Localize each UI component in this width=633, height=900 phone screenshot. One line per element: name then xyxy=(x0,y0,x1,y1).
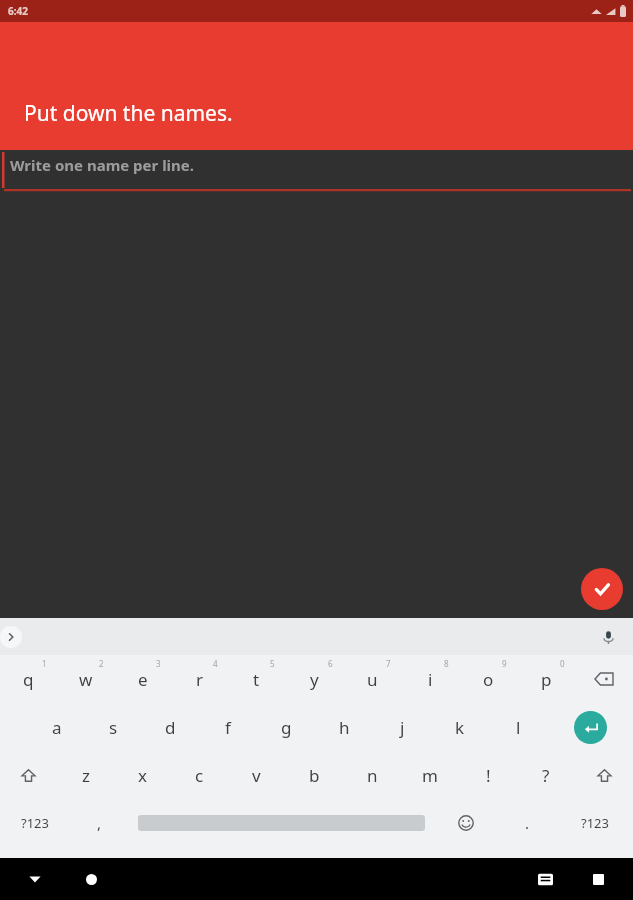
button[interactable]: Space xyxy=(129,799,434,847)
staticText: 8 xyxy=(444,658,449,669)
staticText: o xyxy=(483,668,494,691)
button[interactable]: f xyxy=(199,703,257,751)
button[interactable]: p xyxy=(517,655,575,703)
staticText: a xyxy=(52,716,62,739)
staticText: 9 xyxy=(502,658,507,669)
button[interactable]: m xyxy=(401,751,459,799)
button[interactable]: q xyxy=(0,655,57,703)
button[interactable]: o xyxy=(459,655,517,703)
button[interactable]: c xyxy=(171,751,228,799)
button[interactable]: Recent apps xyxy=(585,866,611,892)
button[interactable]: ! xyxy=(459,751,517,799)
button[interactable]: j xyxy=(373,703,431,751)
staticText: 6:42 xyxy=(8,4,28,18)
staticText: 4 xyxy=(213,658,218,669)
staticText: ? xyxy=(542,764,550,787)
staticText: h xyxy=(339,716,350,739)
staticText: v xyxy=(252,764,261,787)
staticText: w xyxy=(79,668,93,691)
button[interactable]: Home xyxy=(78,866,104,892)
button[interactable]: i xyxy=(401,655,459,703)
button[interactable]: Voice input xyxy=(597,626,619,648)
button[interactable]: Switch keyboard xyxy=(532,866,558,892)
staticText: 5 xyxy=(270,658,275,669)
button[interactable]: . xyxy=(498,799,557,847)
staticText: i xyxy=(428,668,433,691)
staticText: ?123 xyxy=(21,814,49,832)
button[interactable]: x xyxy=(114,751,171,799)
staticText: t xyxy=(253,668,260,691)
staticText: Write one name per line. xyxy=(10,155,195,175)
button[interactable]: z xyxy=(57,751,114,799)
staticText: x xyxy=(138,764,147,787)
staticText: d xyxy=(165,716,176,739)
staticText: e xyxy=(138,668,148,691)
button[interactable]: Expand suggestions xyxy=(0,626,22,648)
button[interactable]: Name list input xyxy=(0,150,633,195)
staticText: 3 xyxy=(156,658,161,669)
staticText: s xyxy=(109,716,118,739)
staticText: , xyxy=(97,813,102,833)
button[interactable]: s xyxy=(85,703,142,751)
staticText: ?123 xyxy=(581,814,609,832)
button[interactable]: k xyxy=(431,703,489,751)
staticText: m xyxy=(422,764,438,787)
button[interactable]: t xyxy=(228,655,285,703)
staticText: 7 xyxy=(386,658,391,669)
button[interactable]: d xyxy=(142,703,199,751)
button[interactable]: Confirm names xyxy=(581,568,623,610)
staticText: y xyxy=(310,668,319,691)
button[interactable]: ?123 xyxy=(557,799,633,847)
button[interactable]: e xyxy=(114,655,171,703)
button[interactable]: Shift xyxy=(575,751,633,799)
staticText: n xyxy=(367,764,378,787)
staticText: f xyxy=(225,716,231,739)
button[interactable]: l xyxy=(489,703,547,751)
staticText: g xyxy=(281,716,292,739)
button[interactable]: w xyxy=(57,655,114,703)
staticText: 2 xyxy=(99,658,104,669)
staticText: l xyxy=(516,716,521,739)
staticText: z xyxy=(82,764,90,787)
staticText: ! xyxy=(486,764,491,787)
staticText: 1 xyxy=(42,658,47,669)
button[interactable]: r xyxy=(171,655,228,703)
button[interactable]: n xyxy=(343,751,401,799)
button[interactable]: a xyxy=(28,703,85,751)
staticText: b xyxy=(309,764,320,787)
staticText: Put down the names. xyxy=(24,99,233,128)
staticText: u xyxy=(367,668,378,691)
staticText: k xyxy=(455,716,465,739)
staticText: j xyxy=(400,716,405,739)
button[interactable]: Emoji xyxy=(434,799,498,847)
button[interactable]: Backspace xyxy=(575,655,633,703)
button[interactable]: b xyxy=(285,751,343,799)
staticText: q xyxy=(23,668,34,691)
staticText: 6 xyxy=(328,658,333,669)
button[interactable]: g xyxy=(257,703,315,751)
staticText: . xyxy=(525,813,530,833)
button[interactable]: ?123 xyxy=(0,799,70,847)
staticText: p xyxy=(541,668,552,691)
staticText: 0 xyxy=(560,658,565,669)
button[interactable]: Enter xyxy=(547,703,633,751)
button[interactable]: Shift xyxy=(0,751,57,799)
staticText: c xyxy=(195,764,204,787)
button[interactable]: ? xyxy=(517,751,575,799)
button[interactable]: v xyxy=(228,751,285,799)
button[interactable]: y xyxy=(285,655,343,703)
button[interactable]: h xyxy=(315,703,373,751)
button[interactable]: Back xyxy=(22,866,48,892)
button[interactable]: u xyxy=(343,655,401,703)
staticText: r xyxy=(196,668,204,691)
button[interactable]: , xyxy=(70,799,129,847)
